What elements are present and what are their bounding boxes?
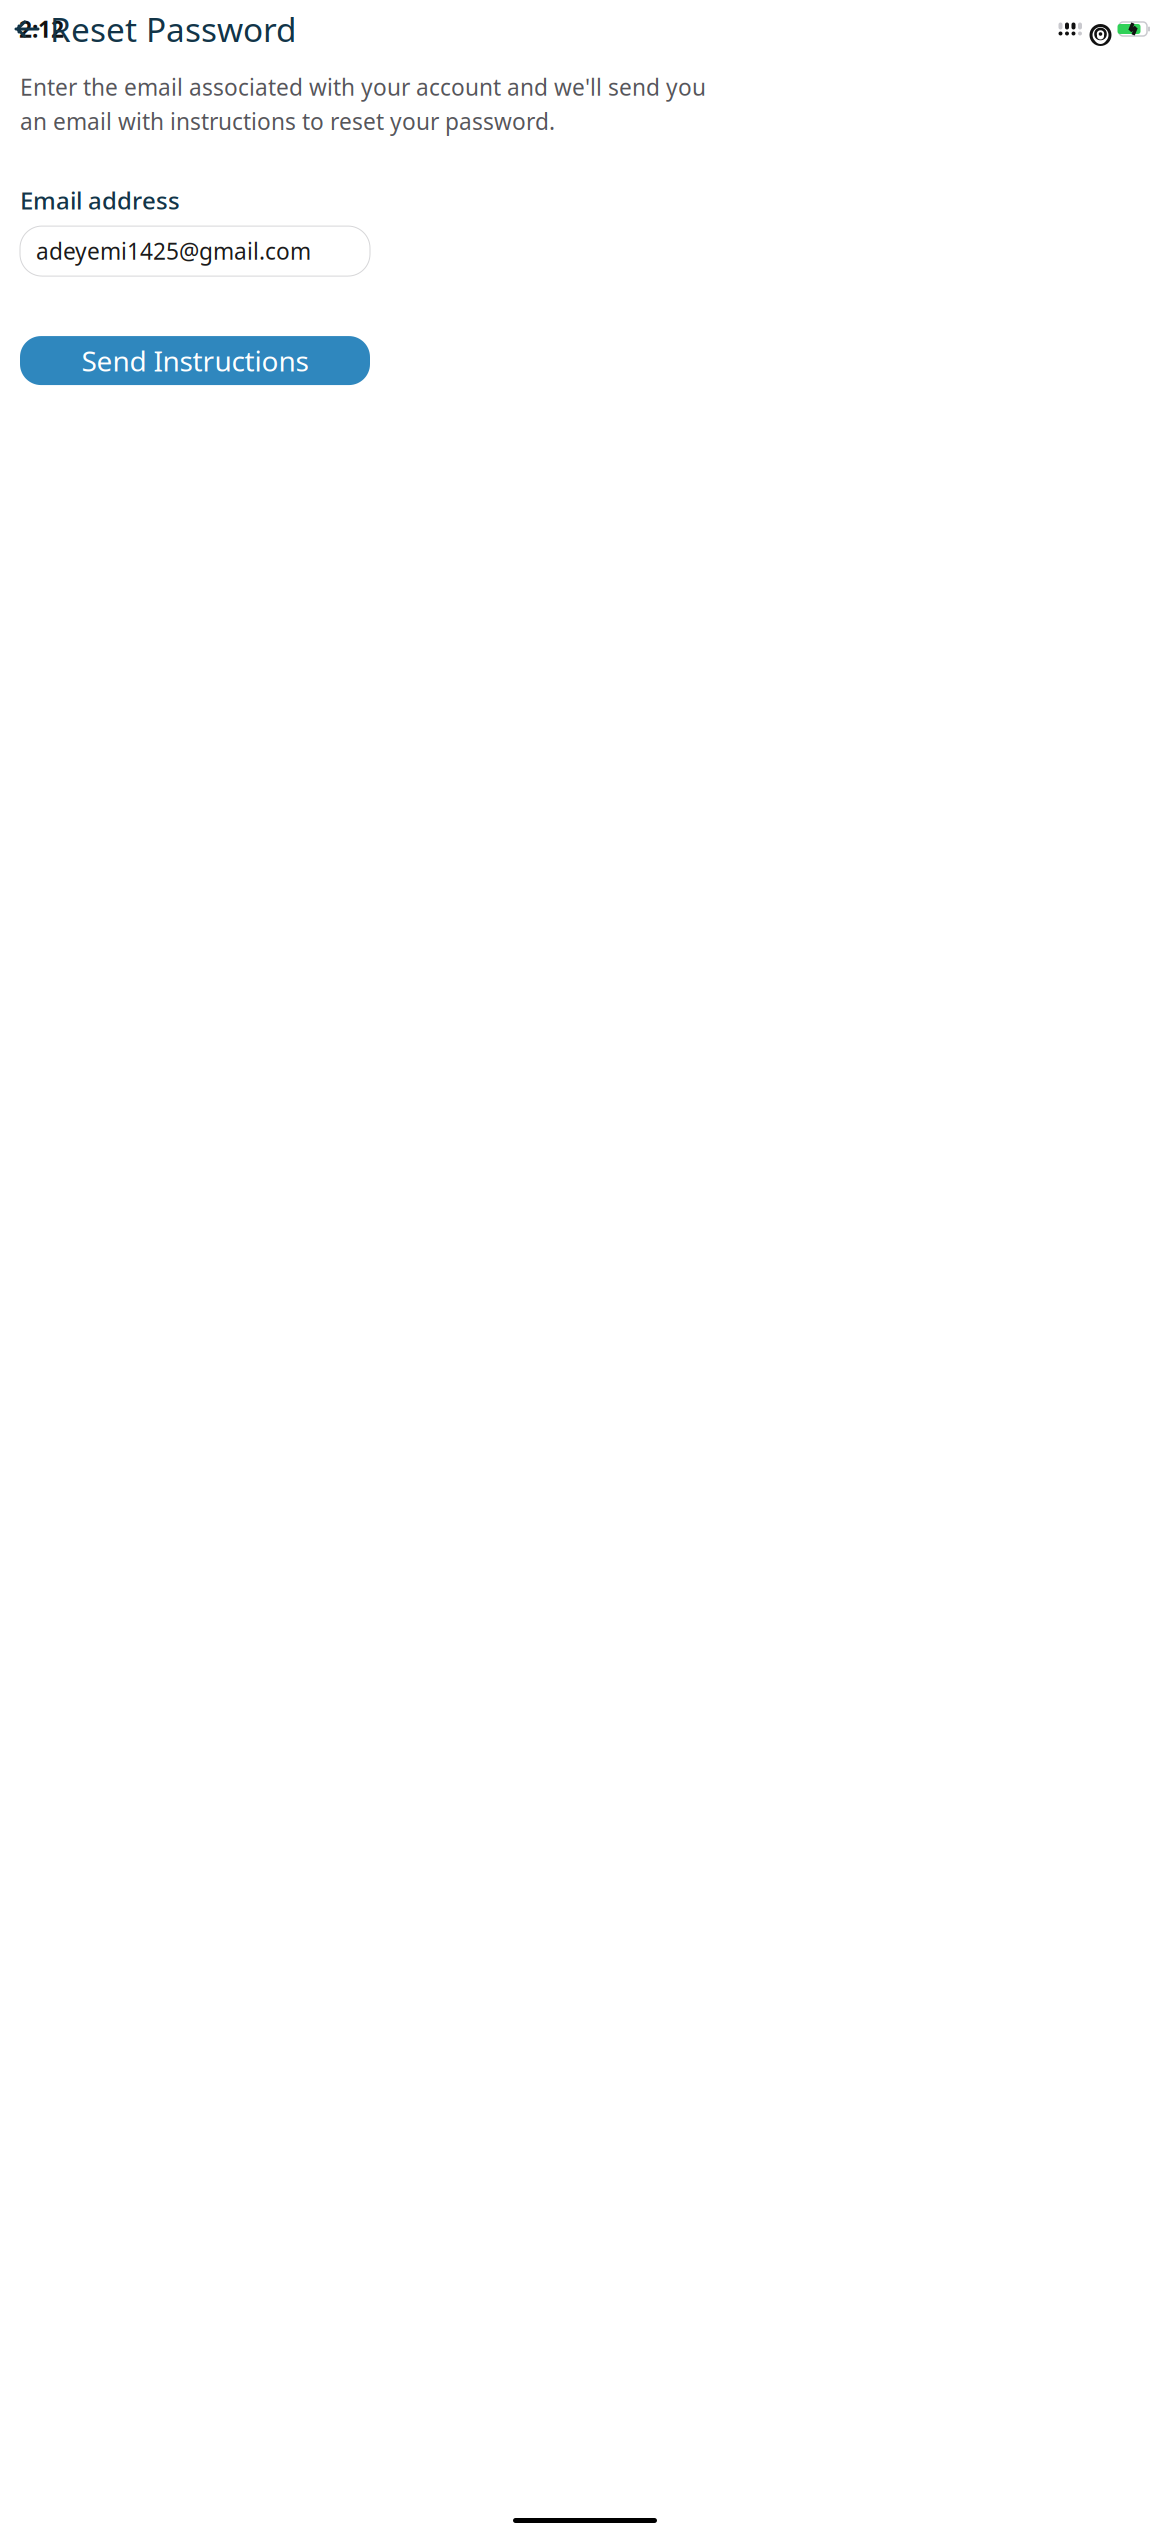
button[interactable]: Back bbox=[12, 17, 42, 41]
staticText: Email address bbox=[20, 184, 180, 216]
staticText: Enter the email associated with your acc… bbox=[20, 72, 706, 102]
staticText: adeyemi1425@gmail.com bbox=[36, 236, 311, 266]
staticText: Send Instructions bbox=[81, 342, 308, 379]
staticText: 2:12 bbox=[19, 14, 64, 44]
staticText: Reset Password bbox=[50, 7, 297, 51]
button[interactable]: Send Instructions bbox=[20, 336, 370, 385]
staticText: an email with instructions to reset your… bbox=[20, 106, 555, 136]
button[interactable]: adeyemi1425@gmail.com bbox=[20, 226, 370, 276]
